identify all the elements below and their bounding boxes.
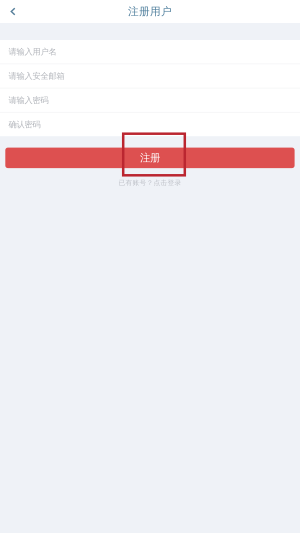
button[interactable]: 注册 [5, 148, 295, 168]
button[interactable]: Back [0, 0, 26, 23]
staticText: 确认密码 [9, 119, 41, 130]
staticText: 请输入用户名 [9, 46, 57, 57]
staticText: 注册用户 [128, 5, 172, 18]
staticText: 注册 [140, 151, 160, 164]
button[interactable]: 已有账号？点击登录 [118, 179, 181, 187]
staticText: 请输入密码 [9, 95, 49, 105]
staticText: 请输入安全邮箱 [9, 71, 65, 81]
staticText: 已有账号？点击登录 [118, 179, 181, 187]
